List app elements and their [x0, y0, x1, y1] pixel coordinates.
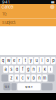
button[interactable]: l: [48, 66, 53, 73]
button[interactable]: Send: [50, 5, 54, 9]
staticText: 123: [4, 85, 9, 88]
staticText: o: [47, 58, 49, 63]
staticText: z: [10, 76, 12, 80]
staticText: t: [25, 58, 26, 63]
button[interactable]: [11, 83, 16, 90]
button[interactable]: 123: [3, 83, 11, 90]
staticText: To:: [2, 12, 7, 16]
button[interactable]: [48, 74, 55, 82]
button[interactable]: v: [26, 74, 30, 82]
staticText: n: [38, 76, 40, 80]
button[interactable]: space: [17, 83, 41, 90]
staticText: e: [13, 58, 15, 63]
staticText: space: [25, 85, 33, 88]
button[interactable]: t: [23, 57, 28, 64]
button[interactable]: r: [17, 57, 22, 64]
button[interactable]: m: [42, 74, 47, 82]
button[interactable]: k: [42, 66, 47, 73]
staticText: ▮▮▮: [51, 0, 54, 3]
staticText: m: [43, 76, 47, 80]
button[interactable]: f: [20, 66, 25, 73]
staticText: 9:41: [2, 0, 10, 4]
button[interactable]: x: [14, 74, 19, 82]
button[interactable]: w: [6, 57, 11, 64]
button[interactable]: b: [31, 74, 36, 82]
button[interactable]: y: [28, 57, 33, 64]
button[interactable]: [41, 83, 53, 90]
button[interactable]: p: [51, 57, 56, 64]
button[interactable]: Cancel: [2, 5, 14, 9]
staticText: r: [19, 58, 21, 63]
staticText: b: [33, 76, 35, 80]
button[interactable]: j: [37, 66, 42, 73]
staticText: c: [21, 76, 23, 80]
button[interactable]: q: [0, 57, 5, 64]
staticText: x: [16, 76, 18, 80]
staticText: k: [44, 67, 46, 72]
staticText: Subject:: [2, 20, 16, 25]
staticText: Cancel: [2, 5, 14, 9]
staticText: h: [33, 67, 35, 72]
staticText: v: [27, 76, 29, 80]
staticText: f: [22, 67, 23, 72]
button[interactable]: u: [34, 57, 39, 64]
button[interactable]: o: [45, 57, 50, 64]
button[interactable]: a: [3, 66, 8, 73]
button[interactable]: d: [14, 66, 19, 73]
button[interactable]: g: [26, 66, 30, 73]
staticText: p: [52, 58, 54, 63]
staticText: d: [16, 67, 18, 72]
button[interactable]: h: [31, 66, 36, 73]
staticText: s: [10, 67, 12, 72]
staticText: q: [2, 58, 4, 63]
staticText: l: [50, 67, 51, 72]
button[interactable]: i: [40, 57, 44, 64]
staticText: y: [30, 58, 32, 63]
button[interactable]: e: [12, 57, 16, 64]
button[interactable]: [1, 74, 8, 82]
button[interactable]: n: [37, 74, 42, 82]
button[interactable]: z: [9, 74, 14, 82]
staticText: w: [7, 58, 10, 63]
button[interactable]: s: [9, 66, 14, 73]
staticText: j: [39, 67, 40, 72]
staticText: g: [27, 67, 29, 72]
staticText: a: [5, 67, 7, 72]
staticText: u: [35, 58, 37, 63]
button[interactable]: c: [20, 74, 25, 82]
